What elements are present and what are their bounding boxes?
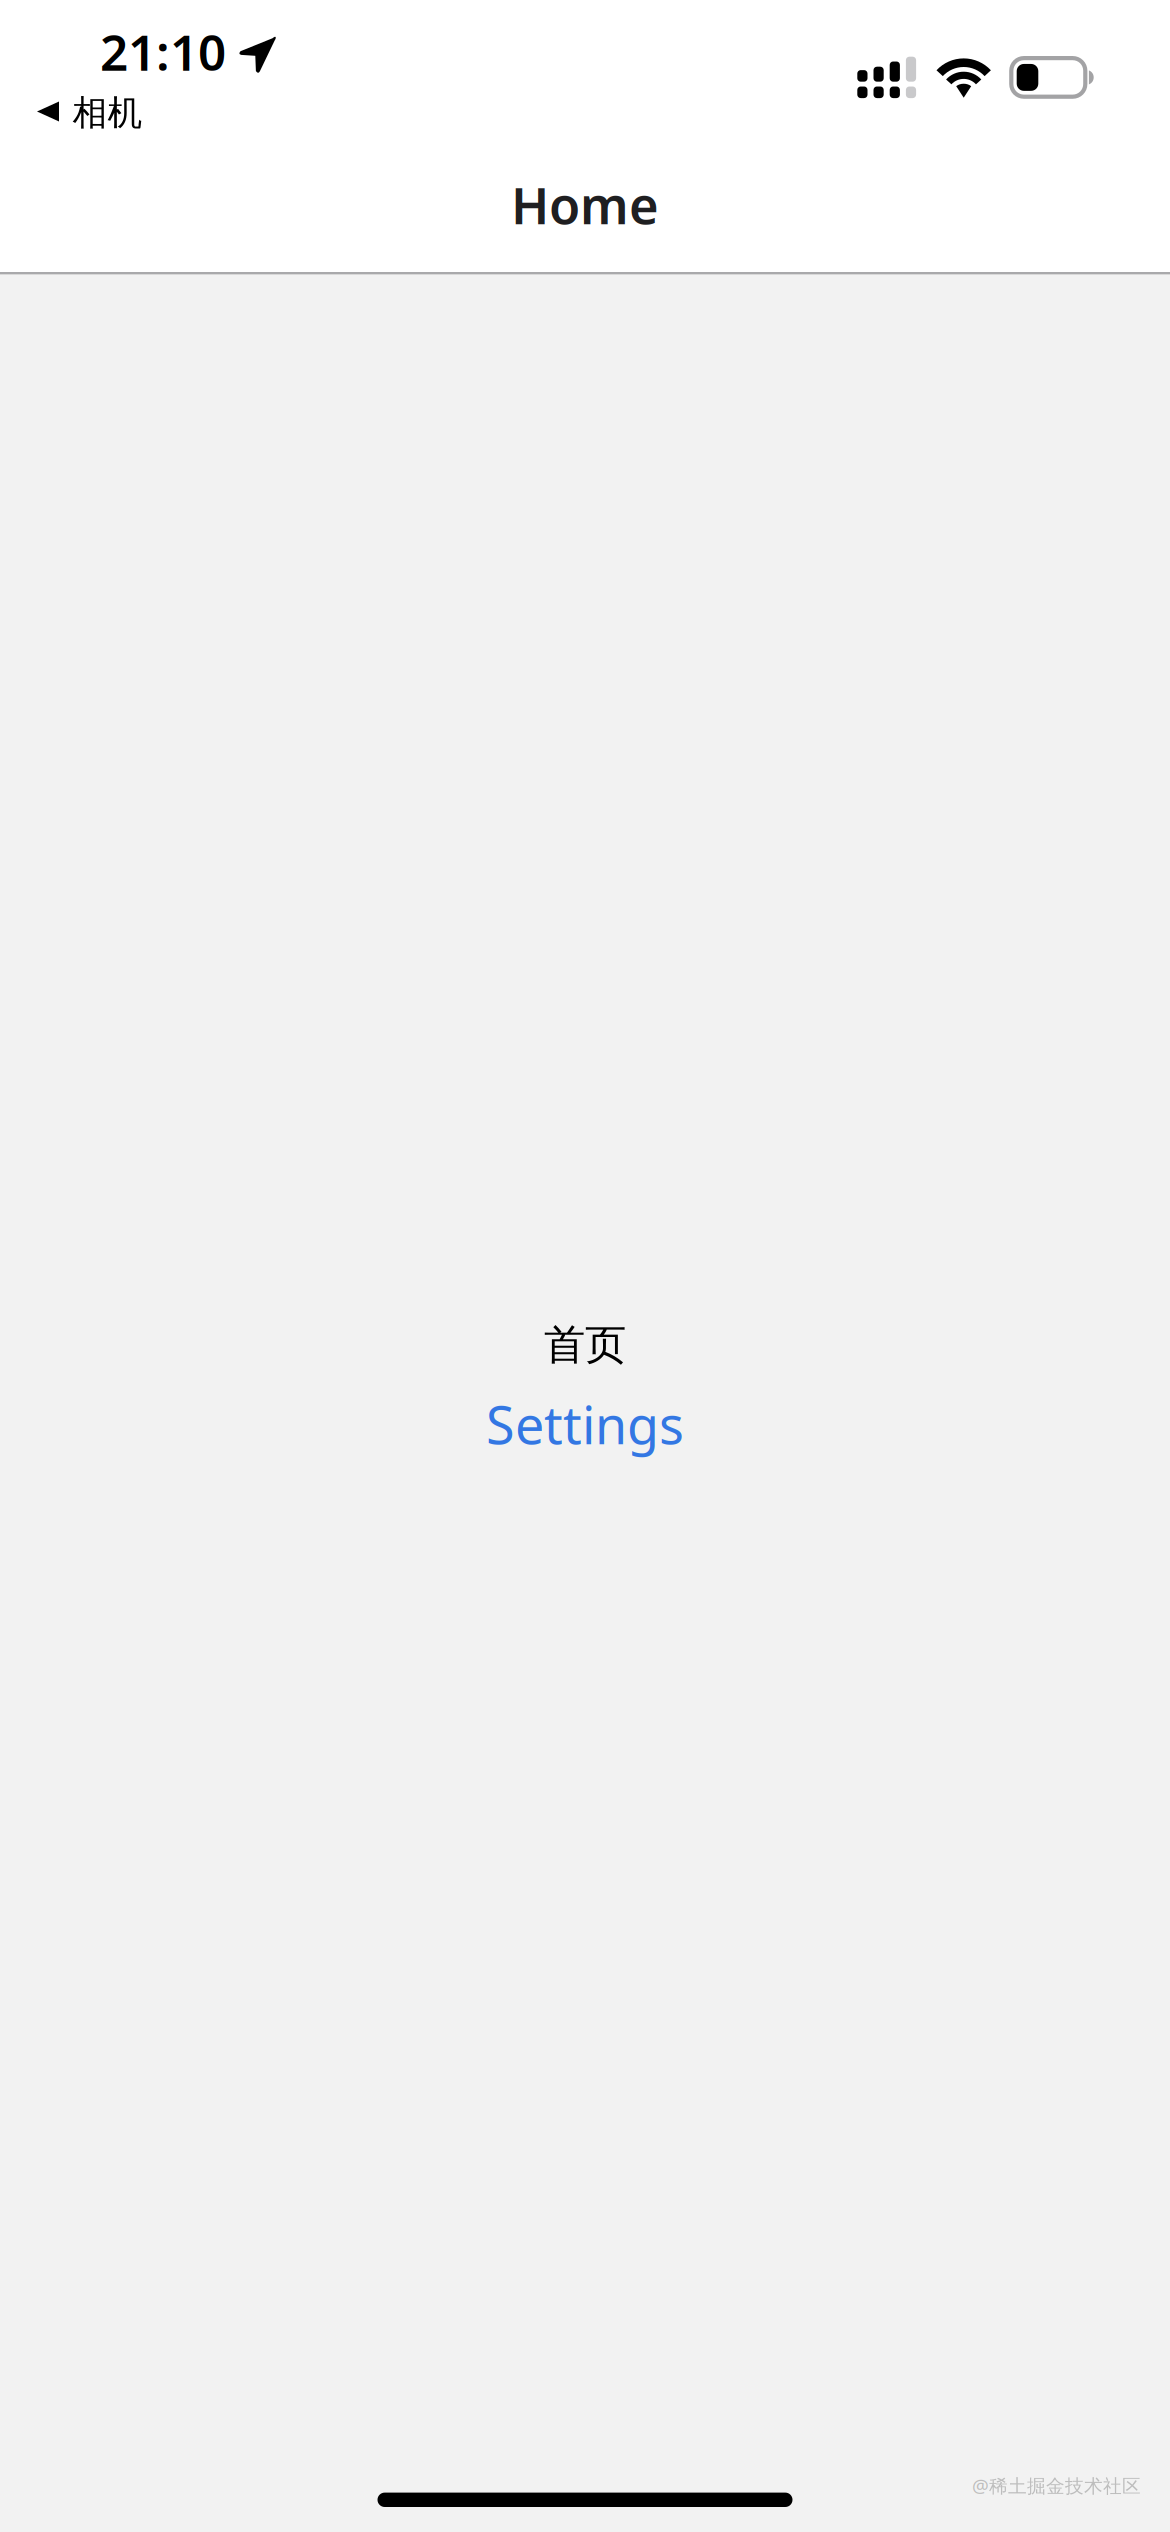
staticText: Settings bbox=[486, 1389, 684, 1459]
staticText: 首页 bbox=[544, 1320, 626, 1370]
staticText: Home bbox=[511, 171, 659, 238]
staticText: 21:10 bbox=[100, 19, 226, 84]
staticText: 相机 bbox=[72, 92, 142, 134]
button[interactable]: Settings bbox=[486, 1395, 684, 1453]
button[interactable]: 返回相机 bbox=[37, 95, 142, 131]
staticText: @稀土掘金技术社区 bbox=[972, 2473, 1141, 2498]
